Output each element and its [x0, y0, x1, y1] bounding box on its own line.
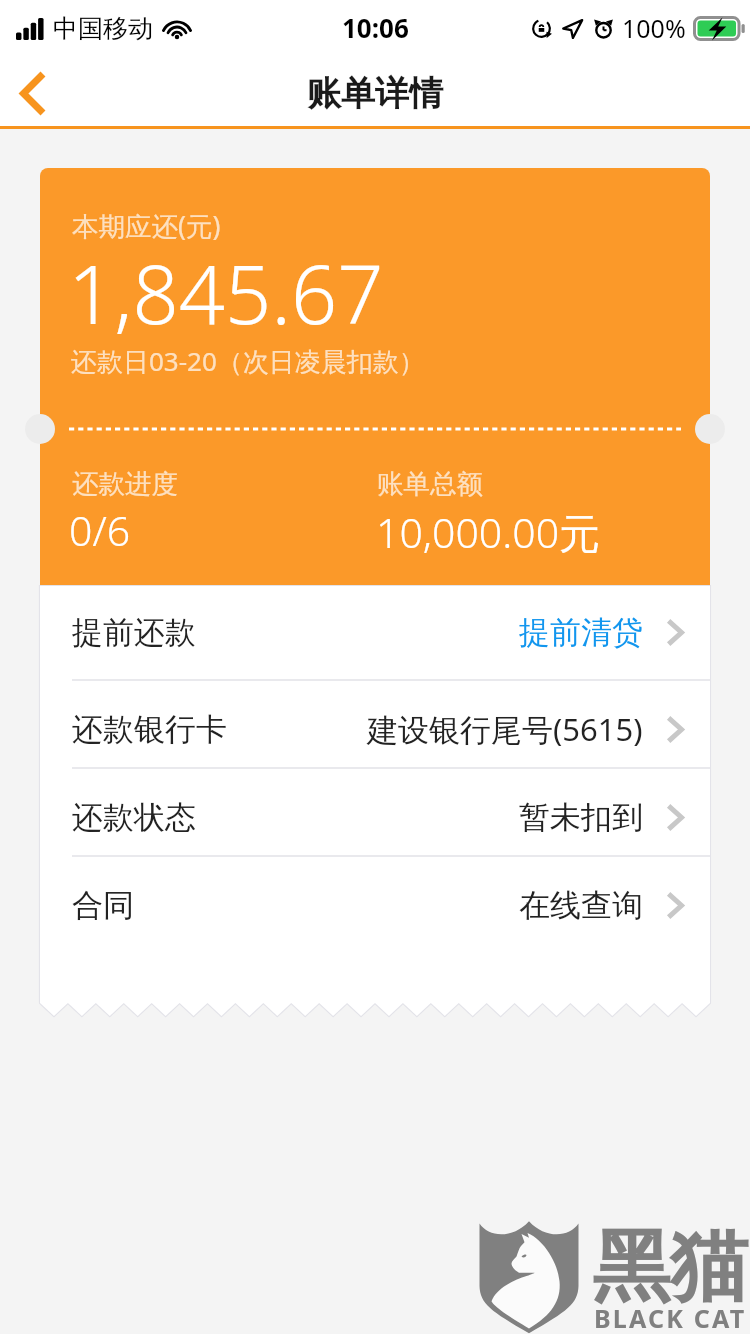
- button[interactable]: 还款状态: [40, 769, 710, 857]
- staticText: 10:06: [342, 10, 409, 45]
- staticText: 提前还款: [72, 613, 196, 652]
- staticText: 建设银行尾号(5615): [367, 708, 643, 750]
- staticText: 账单总额: [377, 467, 483, 500]
- staticText: 1,845.67: [68, 237, 384, 347]
- staticText: 还款进度: [72, 467, 178, 500]
- staticText: 账单详情: [307, 72, 443, 115]
- staticText: 10,000.00元: [376, 504, 601, 560]
- staticText: 100%: [622, 11, 686, 45]
- staticText: 暂未扣到: [519, 798, 643, 837]
- staticText: 还款状态: [72, 798, 196, 837]
- staticText: 还款银行卡: [72, 710, 227, 749]
- staticText: 合同: [72, 886, 134, 925]
- button[interactable]: 合同: [40, 857, 710, 945]
- staticText: 在线查询: [519, 886, 643, 925]
- button[interactable]: 提前还款: [40, 587, 710, 681]
- button[interactable]: Back: [0, 59, 66, 128]
- button[interactable]: 还款银行卡: [40, 681, 710, 769]
- staticText: 本期应还(元): [72, 208, 221, 244]
- staticText: 还款日03-20（次日凌晨扣款）: [71, 343, 425, 379]
- staticText: 0/6: [69, 502, 131, 558]
- staticText: 提前清贷: [519, 613, 643, 652]
- staticText: 黑猫: [592, 1218, 748, 1316]
- staticText: 中国移动: [53, 13, 153, 44]
- staticText: BLACK CAT: [594, 1301, 747, 1334]
